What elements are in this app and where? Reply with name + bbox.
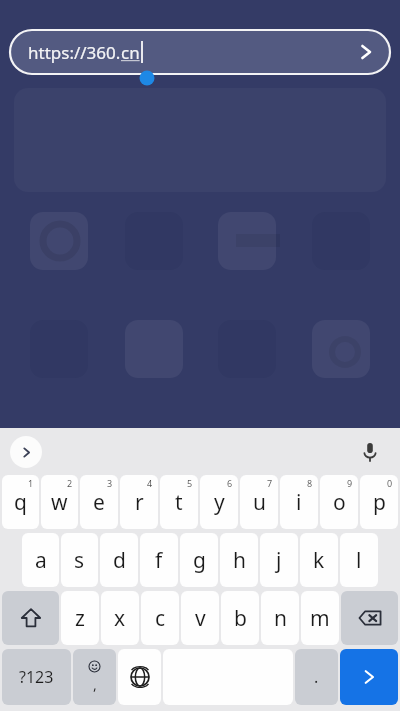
button[interactable]: w [41, 475, 78, 529]
staticText: 1 [28, 477, 34, 489]
staticText: y [214, 488, 225, 517]
button[interactable]: t [160, 475, 198, 529]
staticText: o [333, 488, 346, 517]
staticText: i [296, 488, 302, 517]
staticText: https://360. [28, 41, 121, 64]
button[interactable]: u [240, 475, 278, 529]
staticText: k [313, 546, 325, 575]
staticText: n [274, 604, 287, 633]
button[interactable]: q [2, 475, 39, 529]
staticText: j [276, 546, 282, 575]
staticText: q [14, 488, 27, 517]
button[interactable]: n [261, 591, 299, 645]
button[interactable]: a [22, 533, 59, 587]
staticText: 0 [387, 477, 393, 489]
button[interactable]: l [340, 533, 378, 587]
staticText: 5 [187, 477, 193, 489]
staticText: c [155, 604, 166, 633]
staticText: z [75, 604, 85, 633]
staticText: cn [121, 41, 140, 64]
staticText: u [253, 488, 266, 517]
staticText: w [51, 488, 68, 517]
staticText: r [135, 488, 144, 517]
staticText: d [113, 546, 126, 575]
button[interactable]: p [360, 475, 398, 529]
staticText: h [233, 546, 246, 575]
button[interactable]: Emoji and comma [73, 649, 116, 705]
staticText: 4 [147, 477, 153, 489]
button[interactable]: . [295, 649, 338, 705]
button[interactable]: o [320, 475, 358, 529]
button[interactable]: r [120, 475, 158, 529]
staticText: 6 [227, 477, 233, 489]
staticText: p [373, 488, 386, 517]
staticText: x [114, 604, 126, 633]
staticText: . [314, 666, 319, 688]
staticText: v [195, 604, 206, 633]
staticText: 8 [307, 477, 313, 489]
button[interactable]: m [301, 591, 339, 645]
staticText: 7 [267, 477, 273, 489]
button[interactable]: b [221, 591, 259, 645]
button[interactable]: Go [340, 649, 398, 705]
button[interactable]: j [260, 533, 298, 587]
button[interactable]: f [140, 533, 178, 587]
staticText: , [93, 675, 97, 694]
button[interactable]: e [80, 475, 118, 529]
staticText: t [175, 488, 183, 517]
staticText: e [93, 488, 105, 517]
button[interactable]: i [280, 475, 318, 529]
staticText: f [155, 546, 163, 575]
button[interactable]: ?123 [2, 649, 71, 705]
staticText: ?123 [19, 666, 54, 688]
staticText: g [193, 546, 206, 575]
button[interactable]: z [61, 591, 99, 645]
button[interactable]: Backspace [341, 591, 398, 645]
button[interactable]: Shift [2, 591, 59, 645]
button[interactable]: Voice input [352, 434, 388, 470]
button[interactable]: More suggestions [10, 436, 42, 468]
staticText: s [74, 546, 85, 575]
button[interactable]: Switch language [118, 649, 161, 705]
staticText: m [310, 604, 330, 633]
staticText: 2 [67, 477, 73, 489]
button[interactable]: k [300, 533, 338, 587]
staticText: 3 [107, 477, 113, 489]
staticText: a [35, 546, 47, 575]
button[interactable]: v [181, 591, 219, 645]
button[interactable]: d [100, 533, 138, 587]
staticText: 9 [347, 477, 353, 489]
button[interactable]: https://360. [10, 30, 390, 74]
staticText: l [356, 546, 362, 575]
button[interactable]: Go [344, 30, 388, 74]
button[interactable]: c [141, 591, 179, 645]
button[interactable]: x [101, 591, 139, 645]
button[interactable]: h [220, 533, 258, 587]
staticText: b [234, 604, 247, 633]
button[interactable]: g [180, 533, 218, 587]
button[interactable]: s [61, 533, 98, 587]
button[interactable]: y [200, 475, 238, 529]
